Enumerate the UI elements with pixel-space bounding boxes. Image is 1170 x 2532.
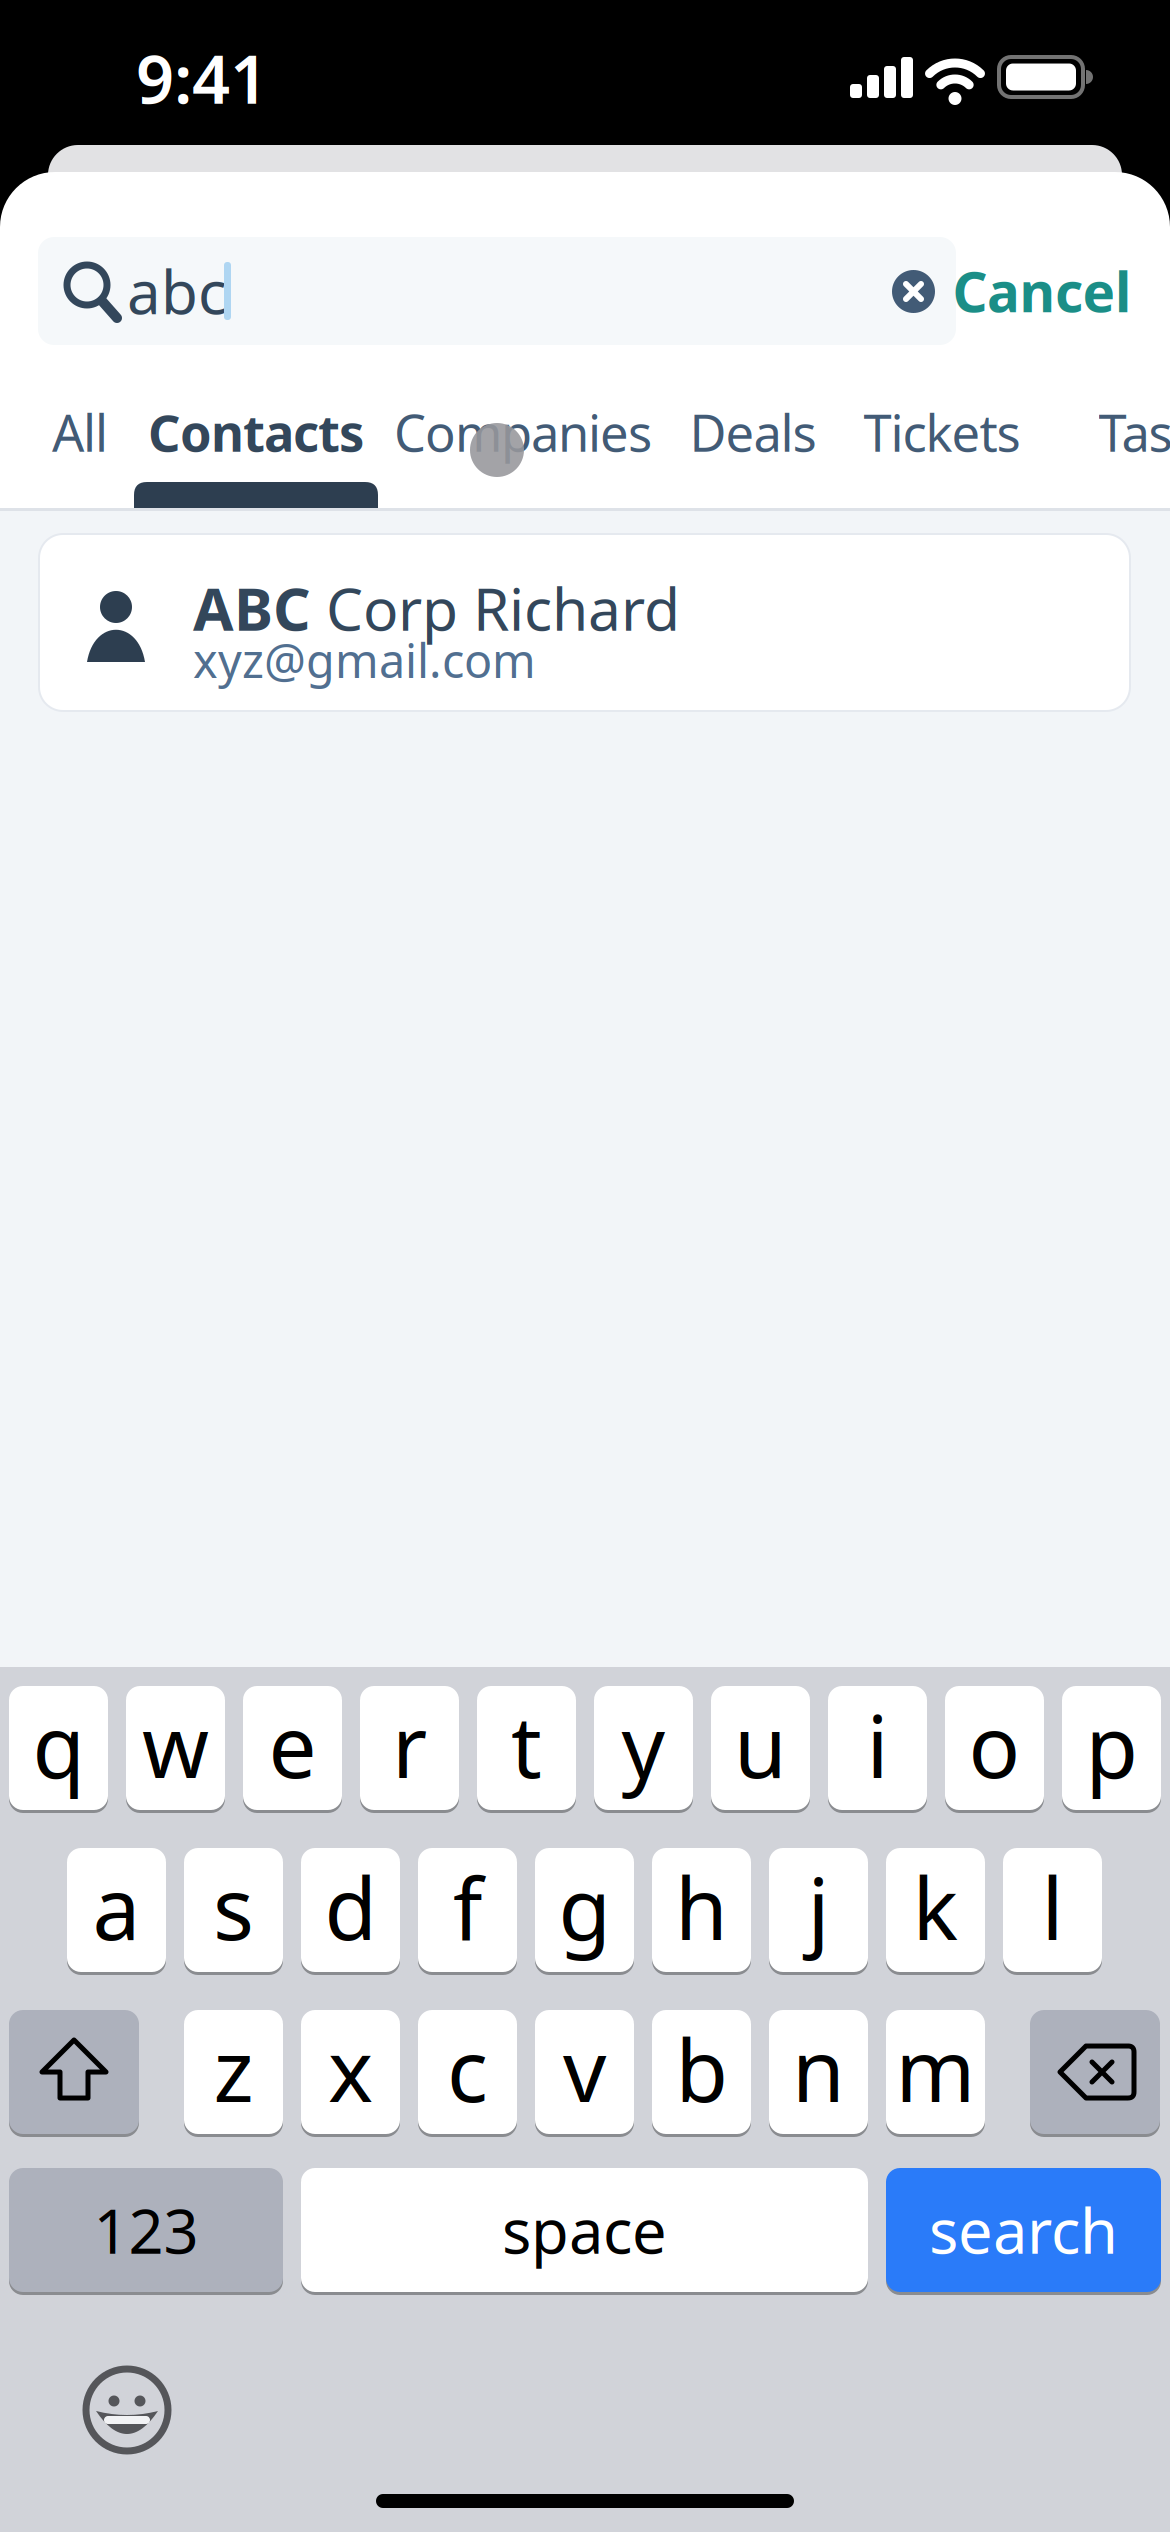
button[interactable]: search xyxy=(886,2168,1161,2292)
staticText: l xyxy=(1041,1850,1063,1964)
staticText: Tasks xyxy=(1098,398,1170,466)
staticText: w xyxy=(142,1688,209,1802)
button[interactable]: i xyxy=(828,1686,927,1810)
staticText: d xyxy=(324,1850,376,1964)
button[interactable]: 123 xyxy=(9,2168,283,2292)
button[interactable]: Companies xyxy=(363,401,683,463)
staticText: k xyxy=(912,1850,958,1964)
staticText: t xyxy=(511,1688,542,1802)
staticText: c xyxy=(447,2012,488,2126)
button[interactable]: k xyxy=(886,1848,985,1972)
button[interactable]: h xyxy=(652,1848,751,1972)
button[interactable]: ABC xyxy=(38,533,1131,712)
button[interactable]: g xyxy=(535,1848,634,1972)
staticText: abc xyxy=(127,251,227,331)
button[interactable]: Search xyxy=(38,237,956,345)
staticText: n xyxy=(792,2012,845,2126)
staticText: a xyxy=(92,1850,140,1964)
button[interactable]: b xyxy=(652,2010,751,2134)
button[interactable]: Cancel xyxy=(901,261,1131,321)
staticText: u xyxy=(734,1688,787,1802)
staticText: Contacts xyxy=(148,398,364,466)
staticText: r xyxy=(392,1688,427,1802)
button[interactable]: e xyxy=(243,1686,342,1810)
staticText: Tickets xyxy=(863,398,1020,466)
staticText: v xyxy=(563,2012,606,2126)
staticText: z xyxy=(213,2012,253,2126)
button[interactable]: w xyxy=(126,1686,225,1810)
staticText: y xyxy=(621,1688,665,1802)
button[interactable]: r xyxy=(360,1686,459,1810)
staticText: x xyxy=(328,2012,373,2126)
button[interactable]: Tasks xyxy=(1000,401,1170,463)
button[interactable]: Deals xyxy=(593,401,913,463)
button[interactable]: t xyxy=(477,1686,576,1810)
staticText: Corp Richard xyxy=(311,569,680,647)
staticText: Deals xyxy=(689,398,816,466)
button[interactable]: Tickets xyxy=(782,401,1102,463)
staticText: h xyxy=(675,1850,728,1964)
button[interactable]: p xyxy=(1062,1686,1161,1810)
staticText: f xyxy=(453,1850,482,1964)
button[interactable]: Emoji xyxy=(82,2365,172,2455)
staticText: Companies xyxy=(394,398,652,466)
button[interactable]: x xyxy=(301,2010,400,2134)
button[interactable]: j xyxy=(769,1848,868,1972)
button[interactable]: n xyxy=(769,2010,868,2134)
staticText: xyz@gmail.com xyxy=(193,629,536,691)
staticText: b xyxy=(675,2012,727,2126)
button[interactable]: Delete xyxy=(1030,2010,1160,2134)
button[interactable]: c xyxy=(418,2010,517,2134)
staticText: p xyxy=(1085,1688,1137,1802)
button[interactable]: q xyxy=(9,1686,108,1810)
button[interactable]: All xyxy=(0,401,240,463)
button[interactable]: m xyxy=(886,2010,985,2134)
staticText: s xyxy=(213,1850,254,1964)
staticText: j xyxy=(807,1850,829,1964)
staticText: 123 xyxy=(93,2189,198,2271)
staticText: g xyxy=(558,1850,610,1964)
button[interactable]: l xyxy=(1003,1848,1102,1972)
button[interactable]: Clear search text xyxy=(892,270,935,313)
staticText: search xyxy=(929,2189,1118,2271)
button[interactable]: Contacts xyxy=(96,401,416,463)
staticText: q xyxy=(32,1688,84,1802)
staticText: Cancel xyxy=(952,255,1131,327)
staticText: m xyxy=(895,2012,975,2126)
button[interactable]: a xyxy=(67,1848,166,1972)
button[interactable]: y xyxy=(594,1686,693,1810)
button[interactable]: o xyxy=(945,1686,1044,1810)
button[interactable]: f xyxy=(418,1848,517,1972)
staticText: ABC xyxy=(193,569,311,647)
staticText: o xyxy=(968,1688,1020,1802)
staticText: 9:41 xyxy=(136,34,268,122)
button[interactable]: u xyxy=(711,1686,810,1810)
staticText: All xyxy=(52,398,108,466)
staticText: i xyxy=(866,1688,888,1802)
button[interactable]: v xyxy=(535,2010,634,2134)
button[interactable]: space xyxy=(301,2168,868,2292)
staticText: space xyxy=(502,2189,667,2271)
button[interactable]: z xyxy=(184,2010,283,2134)
button[interactable]: d xyxy=(301,1848,400,1972)
staticText: e xyxy=(268,1688,316,1802)
button[interactable]: Shift xyxy=(9,2010,139,2134)
button[interactable]: s xyxy=(184,1848,283,1972)
